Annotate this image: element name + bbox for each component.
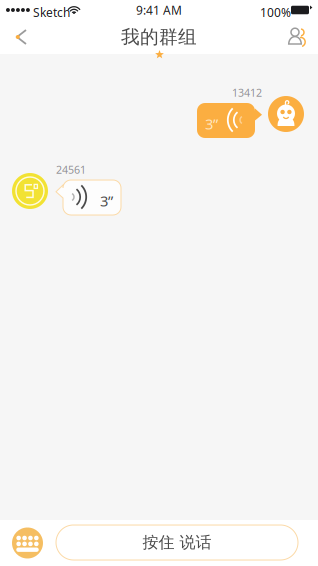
staticText: 我的群组 [121, 25, 197, 48]
staticText: 9:41 AM [136, 2, 182, 18]
button[interactable]: Back [0, 20, 44, 54]
staticText: 13412 [232, 85, 262, 100]
staticText: 按住 说话 [142, 533, 211, 552]
staticText: Sketch [33, 4, 70, 20]
button[interactable]: Group members [278, 20, 318, 54]
staticText: 100% [260, 4, 291, 20]
button[interactable]: 按住 说话 [56, 525, 298, 560]
staticText: 3” [205, 114, 218, 133]
staticText: 24561 [56, 162, 86, 177]
staticText: 3” [100, 191, 113, 210]
button[interactable]: Keyboard [0, 520, 54, 566]
